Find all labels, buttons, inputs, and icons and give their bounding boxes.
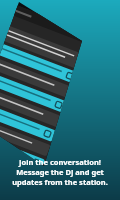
staticText: Message the DJ and get <box>16 167 104 177</box>
staticText: updates from the station. <box>12 177 108 187</box>
staticText: Join the conversation! <box>19 157 101 167</box>
